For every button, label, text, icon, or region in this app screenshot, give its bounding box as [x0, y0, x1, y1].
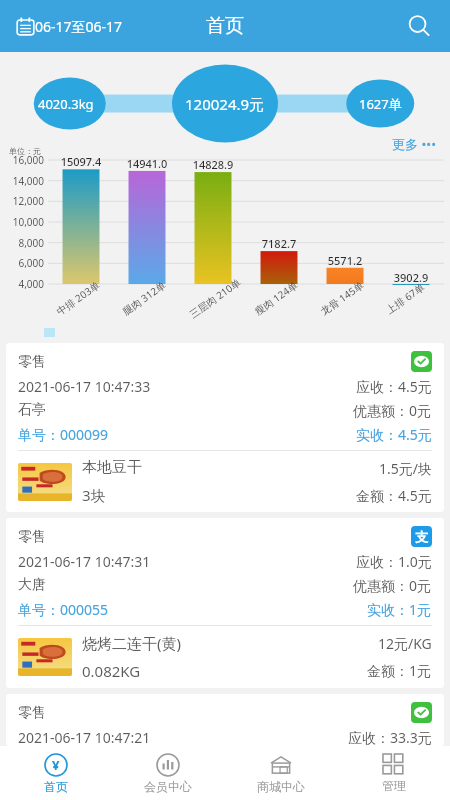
staticText: 120024.9元 — [185, 94, 265, 114]
button[interactable]: WeChat Pay — [411, 351, 432, 372]
staticText: 10,000 — [2, 215, 44, 229]
staticText: ¥ — [52, 756, 60, 774]
staticText: 4020.3kg — [38, 95, 94, 113]
staticText: 零售 — [18, 528, 46, 546]
button[interactable]: ¥ — [0, 746, 112, 800]
staticText: 本地豆干 — [82, 458, 142, 477]
button[interactable]: Alipay — [411, 526, 432, 547]
button[interactable]: 零售 — [6, 343, 444, 512]
staticText: 单号：000055 — [18, 600, 109, 619]
staticText: 7182.7 — [251, 236, 307, 251]
staticText: 3902.9 — [383, 270, 439, 285]
button[interactable]: Search — [402, 9, 436, 43]
staticText: 金额：1元 — [367, 661, 432, 680]
staticText: 零售 — [18, 704, 46, 722]
button[interactable]: 06-17至06-17 — [14, 15, 125, 38]
staticText: 单位：元 — [9, 146, 41, 156]
staticText: 支 — [415, 529, 428, 545]
staticText: 上排 67单 — [383, 279, 428, 317]
staticText: 优惠额：0元 — [353, 401, 432, 420]
staticText: 15097.4 — [53, 154, 109, 169]
staticText: 首页 — [206, 14, 244, 38]
staticText: 1.5元/块 — [379, 459, 432, 478]
staticText: 8,000 — [2, 236, 44, 250]
button[interactable]: WeChat Pay — [411, 702, 432, 723]
staticText: 14,000 — [2, 174, 44, 188]
staticText: 单号：000099 — [18, 425, 109, 444]
staticText: 会员中心 — [144, 779, 192, 794]
staticText: 6,000 — [2, 256, 44, 270]
staticText: 14941.0 — [119, 156, 175, 171]
button[interactable]: 零售 — [6, 518, 444, 688]
staticText: 5571.2 — [317, 253, 373, 268]
button[interactable]: 商城中心 — [224, 746, 337, 800]
staticText: 4,000 — [2, 277, 44, 291]
staticText: 瘦肉 124单 — [251, 278, 300, 318]
staticText: 首页 — [44, 779, 68, 794]
staticText: 零售 — [18, 353, 46, 371]
staticText: 2021-06-17 10:47:31 — [18, 552, 151, 571]
staticText: 烧烤二连干(黄) — [82, 633, 182, 653]
staticText: 12,000 — [2, 194, 44, 208]
staticText: 16,000 — [2, 153, 44, 167]
staticText: 应收：4.5元 — [356, 377, 432, 396]
button[interactable]: 更多 ••• — [389, 132, 440, 156]
staticText: 应收：33.3元 — [348, 728, 432, 746]
staticText: 大唐 — [18, 576, 46, 594]
staticText: 商城中心 — [257, 779, 305, 794]
staticText: 1627单 — [359, 95, 402, 113]
staticText: 中排 203单 — [53, 278, 102, 318]
staticText: 2021-06-17 10:47:33 — [18, 377, 151, 396]
staticText: 12元/KG — [378, 634, 432, 653]
staticText: 实收：1元 — [367, 600, 432, 619]
staticText: 三层肉 210单 — [186, 275, 244, 321]
staticText: 管理 — [382, 778, 406, 793]
staticText: 2021-06-17 10:47:21 — [18, 728, 151, 746]
staticText: 优惠额：0元 — [353, 576, 432, 595]
button[interactable]: 会员中心 — [112, 746, 224, 800]
staticText: 3块 — [82, 485, 106, 505]
staticText: 更多 ••• — [392, 135, 437, 153]
staticText: 龙骨 145单 — [317, 278, 366, 318]
staticText: 应收：1.0元 — [356, 552, 432, 571]
button[interactable]: 管理 — [337, 746, 450, 800]
staticText: 06-17至06-17 — [35, 17, 123, 36]
staticText: 14828.9 — [185, 157, 241, 172]
staticText: 石亭 — [18, 401, 46, 419]
staticText: 腿肉 312单 — [119, 278, 168, 318]
staticText: 实收：4.5元 — [356, 425, 432, 444]
staticText: 0.082KG — [82, 661, 141, 681]
button[interactable]: 零售 — [6, 694, 444, 746]
staticText: 金额：4.5元 — [356, 486, 432, 505]
